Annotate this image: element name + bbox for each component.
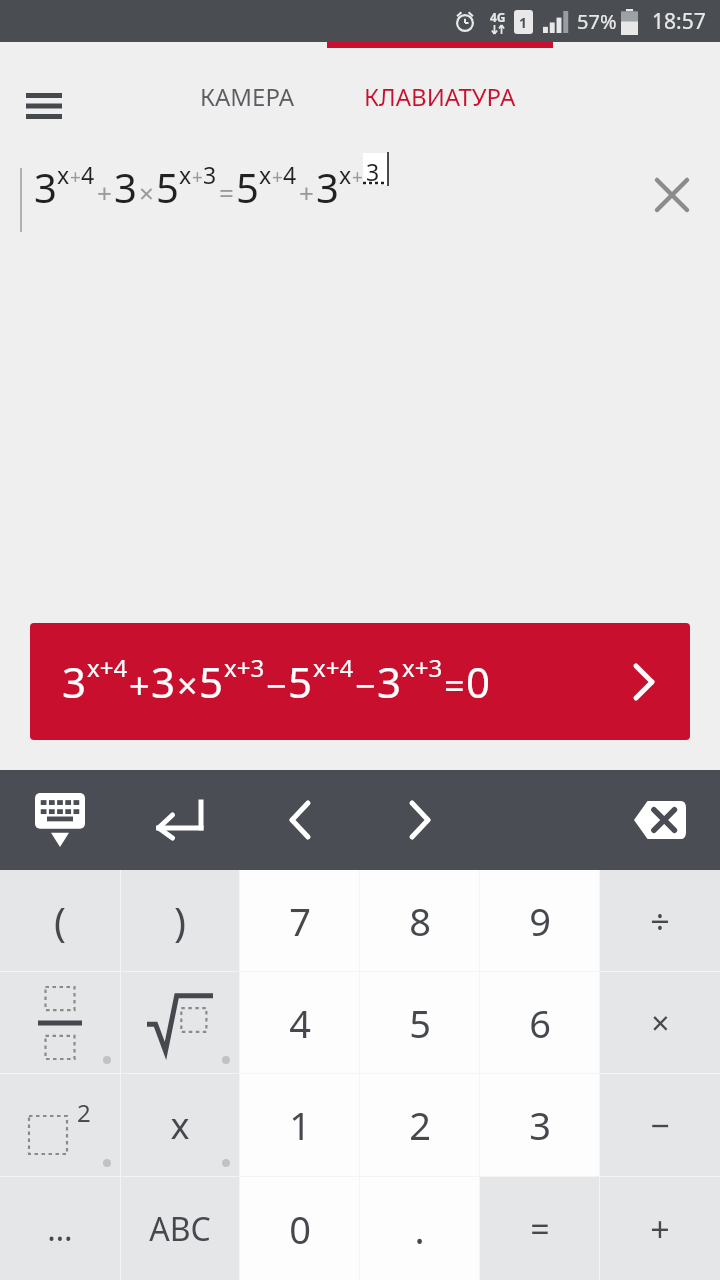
staticText: 5 (199, 653, 224, 710)
staticText: − (650, 1102, 670, 1148)
staticText: 4G (490, 9, 506, 25)
staticText: 5 (156, 160, 179, 214)
staticText: 1 (289, 1099, 311, 1151)
staticText: ) (174, 894, 186, 948)
button[interactable]: 6 (480, 972, 599, 1073)
staticText: = (219, 175, 234, 210)
other: Show solution (620, 658, 668, 706)
button[interactable]: ABC (121, 1177, 239, 1280)
staticText: = (530, 1206, 550, 1252)
button[interactable]: КАМЕРА (160, 62, 335, 130)
button[interactable]: + (600, 1177, 720, 1280)
staticText: x (170, 1101, 190, 1150)
staticText: 9 (529, 895, 551, 947)
staticText: 2 (77, 1096, 91, 1129)
staticText: + (129, 661, 150, 710)
button[interactable]: КЛАВИАТУРА (340, 62, 540, 130)
staticText: x (57, 159, 70, 190)
button[interactable]: ) (121, 870, 239, 971)
staticText: ( (54, 894, 66, 948)
button[interactable]: Power (0, 1074, 120, 1176)
staticText: + (192, 164, 203, 190)
staticText: 18:57 (652, 7, 706, 36)
staticText: 3 (114, 160, 137, 214)
button[interactable]: Clear (645, 168, 699, 222)
staticText: + (70, 164, 81, 190)
button[interactable]: 3 (480, 1074, 599, 1176)
staticText: = (444, 661, 465, 710)
staticText: x+4 (313, 651, 354, 684)
staticText: 2 (409, 1099, 431, 1151)
button[interactable]: 3 (30, 623, 690, 740)
staticText: + (352, 164, 363, 190)
staticText: 3 (203, 159, 217, 190)
staticText: × (139, 175, 154, 210)
staticText: 5 (236, 160, 259, 214)
staticText: + (650, 1206, 670, 1252)
button[interactable]: = (480, 1177, 599, 1280)
button[interactable]: Square root (121, 972, 239, 1073)
staticText: 5 (409, 997, 431, 1049)
staticText: 3 (377, 653, 402, 710)
staticText: 3 (366, 156, 380, 187)
staticText: + (272, 164, 283, 190)
staticText: 3 (62, 653, 87, 710)
button[interactable]: 2 (360, 1074, 479, 1176)
staticText: − (266, 661, 287, 710)
staticText: x (259, 159, 272, 190)
button[interactable]: 5 (360, 972, 479, 1073)
button[interactable]: Right (382, 788, 458, 852)
staticText: 4 (289, 997, 311, 1049)
staticText: КЛАВИАТУРА (364, 80, 516, 113)
staticText: x (339, 159, 352, 190)
staticText: × (651, 1001, 670, 1045)
button[interactable]: 7 (240, 870, 359, 971)
button[interactable]: Backspace (622, 788, 698, 852)
staticText: 7 (289, 895, 311, 947)
staticText: 4 (81, 159, 95, 190)
button[interactable]: . (360, 1177, 479, 1280)
button[interactable]: Hide keyboard (22, 788, 98, 852)
staticText: 8 (409, 895, 431, 947)
staticText: 3 (34, 160, 57, 214)
button[interactable]: 9 (480, 870, 599, 971)
button[interactable]: Left (262, 788, 338, 852)
staticText: − (355, 661, 376, 710)
staticText: 57% (577, 8, 617, 35)
button[interactable]: 0 (240, 1177, 359, 1280)
button[interactable]: 8 (360, 870, 479, 971)
staticText: 4 (283, 159, 297, 190)
button[interactable]: × (600, 972, 720, 1073)
staticText: x+3 (224, 651, 265, 684)
button[interactable]: … (0, 1177, 120, 1280)
button[interactable]: ( (0, 870, 120, 971)
staticText: . (414, 1203, 425, 1255)
staticText: 0 (289, 1203, 311, 1255)
staticText: + (299, 175, 314, 210)
staticText: × (177, 661, 198, 710)
button[interactable]: 1 (240, 1074, 359, 1176)
staticText: 0 (466, 653, 491, 710)
staticText: 3 (529, 1099, 551, 1151)
staticText: … (47, 1207, 73, 1251)
button[interactable]: 4 (240, 972, 359, 1073)
staticText: 5 (288, 653, 313, 710)
staticText: x+3 (402, 651, 443, 684)
button[interactable]: Menu (8, 70, 80, 142)
staticText: 3 (316, 160, 339, 214)
staticText: 1 (519, 13, 528, 32)
staticText: x+4 (87, 651, 128, 684)
staticText: + (97, 175, 112, 210)
staticText: 6 (529, 997, 551, 1049)
button[interactable]: − (600, 1074, 720, 1176)
staticText: 3 (151, 653, 176, 710)
staticText: КАМЕРА (200, 80, 295, 113)
button[interactable]: x (121, 1074, 239, 1176)
button[interactable]: ÷ (600, 870, 720, 971)
staticText: ABC (149, 1207, 211, 1251)
staticText: ÷ (650, 898, 670, 944)
button[interactable]: Enter (140, 788, 216, 852)
button[interactable]: Fraction (0, 972, 120, 1073)
staticText: x (179, 159, 192, 190)
